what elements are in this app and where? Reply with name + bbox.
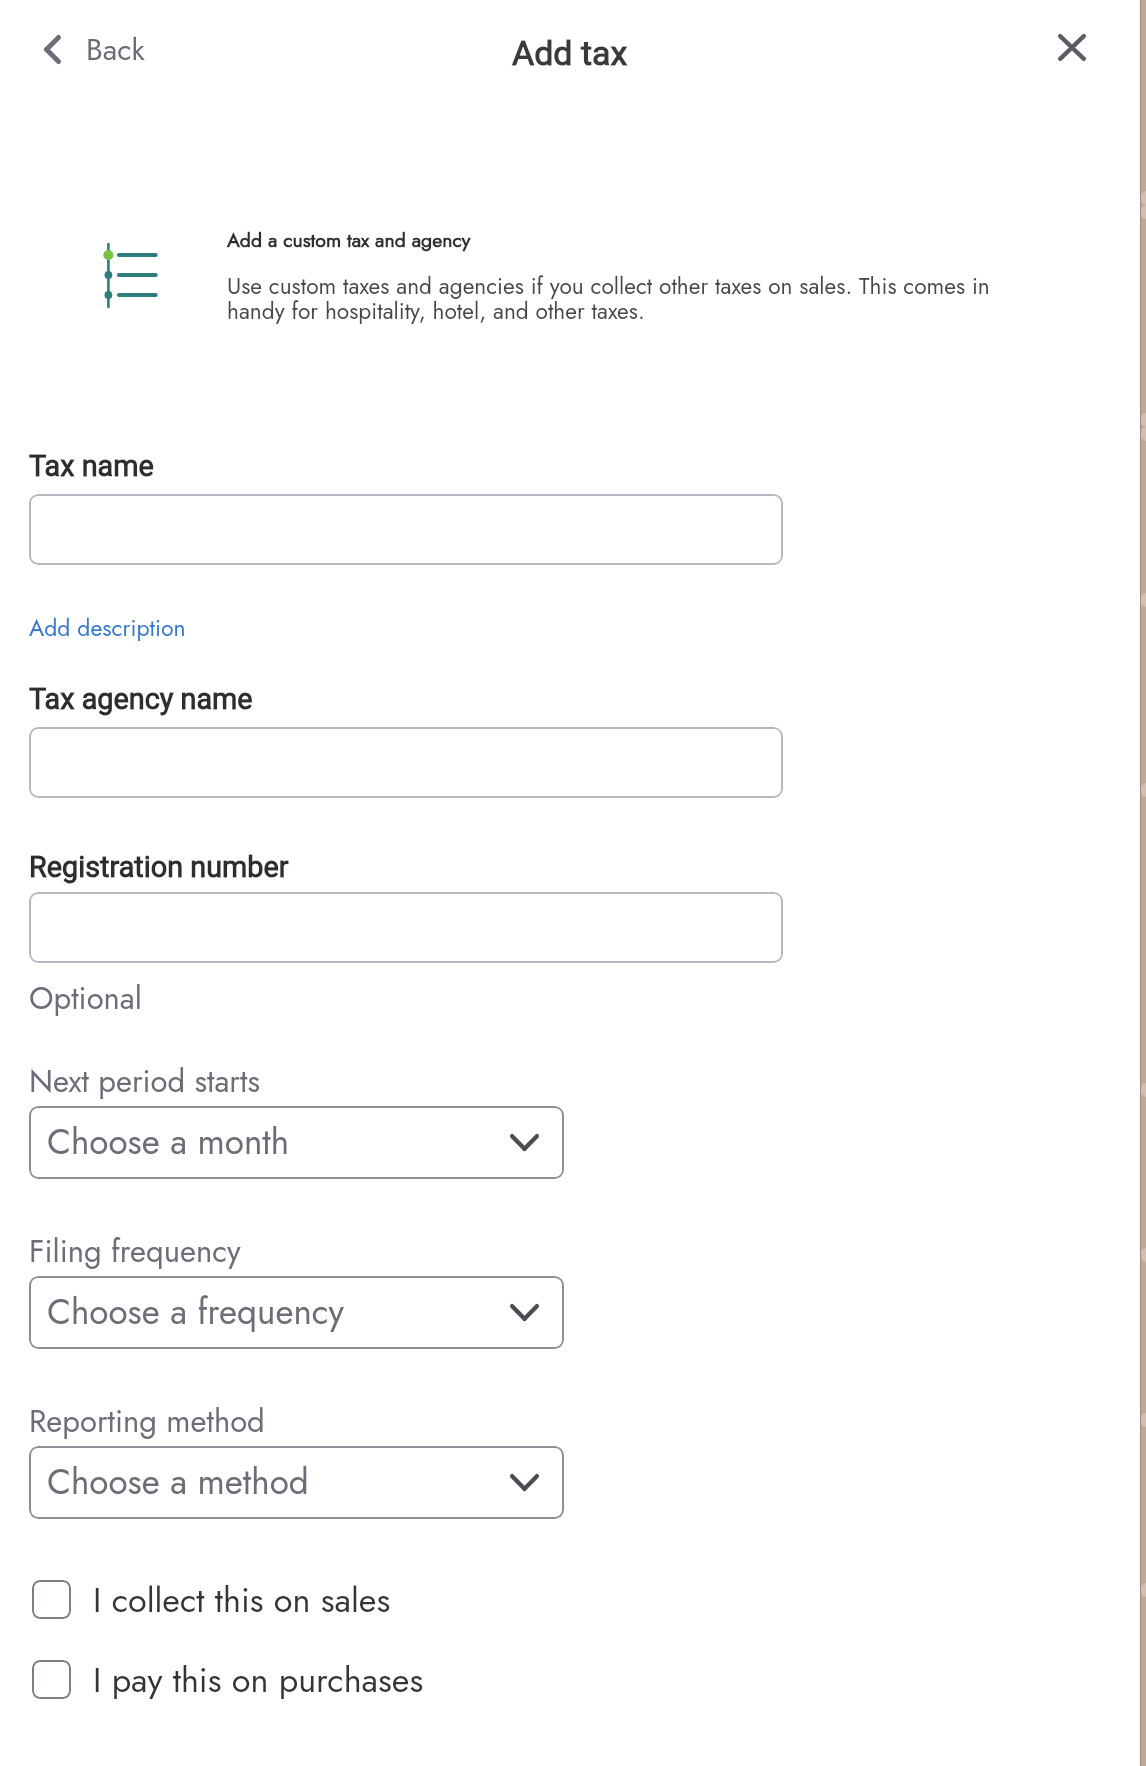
button[interactable]: Registration number <box>29 892 783 963</box>
staticText: Add a custom tax and agency <box>227 226 471 254</box>
button[interactable]: Choose a month <box>29 1106 564 1179</box>
staticText: Use custom taxes and agencies if you col… <box>227 270 1017 328</box>
button[interactable]: Tax agency name <box>29 727 783 798</box>
button[interactable]: I collect this on sales <box>24 1567 411 1632</box>
staticText: Add tax <box>512 33 628 73</box>
staticText: Choose a month <box>47 1117 510 1168</box>
other: Custom tax list <box>103 242 159 309</box>
staticText: Optional <box>29 976 142 1021</box>
button[interactable]: Add description <box>23 605 192 650</box>
staticText: Tax agency name <box>29 682 253 716</box>
staticText: Next period starts <box>29 1059 260 1104</box>
button[interactable]: Back <box>34 18 163 81</box>
staticText: I collect this on sales <box>93 1575 391 1624</box>
staticText: Back <box>86 28 145 71</box>
staticText: Add description <box>29 611 186 644</box>
button[interactable]: Choose a frequency <box>29 1276 564 1349</box>
staticText: Registration number <box>29 850 289 884</box>
button[interactable]: Tax name <box>29 494 783 565</box>
staticText: Choose a frequency <box>47 1287 510 1338</box>
button[interactable]: Close <box>1042 18 1102 77</box>
button[interactable]: I pay this on purchases <box>24 1647 444 1712</box>
staticText: Reporting method <box>29 1399 265 1444</box>
staticText: I pay this on purchases <box>93 1655 424 1704</box>
staticText: Choose a method <box>47 1457 510 1508</box>
staticText: Filing frequency <box>29 1229 241 1274</box>
button[interactable]: Choose a method <box>29 1446 564 1519</box>
staticText: Tax name <box>29 449 154 483</box>
